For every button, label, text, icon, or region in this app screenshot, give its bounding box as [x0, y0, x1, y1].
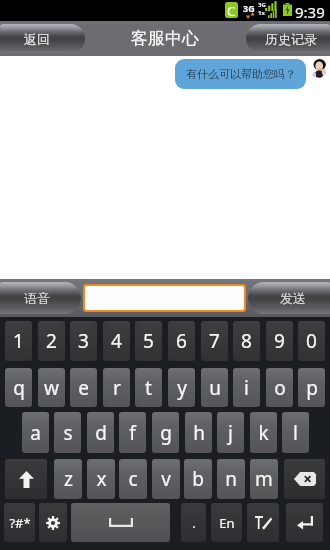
button[interactable]: z — [54, 459, 82, 499]
staticText: g — [160, 420, 172, 446]
button[interactable]: v — [152, 459, 180, 499]
staticText: 3 — [78, 328, 89, 354]
staticText: y — [177, 375, 187, 401]
staticText: 6 — [176, 328, 187, 354]
staticText: i — [244, 375, 249, 401]
staticText: c — [128, 466, 138, 492]
button[interactable]: j — [217, 412, 244, 453]
button[interactable]: Backspace — [284, 459, 325, 499]
staticText: h — [193, 420, 205, 446]
staticText: e — [78, 375, 89, 401]
staticText: 历史记录 — [265, 31, 317, 47]
staticText: . — [192, 514, 196, 532]
button[interactable]: Shift — [5, 459, 47, 499]
staticText: v — [161, 466, 171, 492]
button[interactable]: m — [250, 459, 278, 499]
staticText: m — [255, 466, 273, 492]
button[interactable]: 9 — [266, 321, 293, 361]
staticText: k — [258, 420, 269, 446]
button[interactable]: p — [298, 368, 325, 407]
staticText: 返回 — [24, 31, 50, 47]
staticText: 3G — [243, 2, 255, 14]
staticText: 1x — [258, 9, 265, 17]
button[interactable]: 语音 — [0, 282, 81, 314]
button[interactable]: 4 — [103, 321, 130, 361]
staticText: o — [274, 375, 286, 401]
button[interactable]: Handwriting — [247, 503, 279, 542]
button[interactable]: 0 — [298, 321, 325, 361]
staticText: 9:39 — [295, 2, 325, 22]
button[interactable]: 6 — [168, 321, 195, 361]
button[interactable]: s — [54, 412, 81, 453]
staticText: En — [219, 514, 235, 532]
staticText: 语音 — [24, 290, 50, 306]
staticText: f — [129, 420, 136, 446]
staticText: 2 — [46, 328, 57, 354]
button[interactable]: g — [152, 412, 179, 453]
staticText: a — [30, 420, 41, 446]
button[interactable]: k — [250, 412, 277, 453]
button[interactable]: 5 — [135, 321, 162, 361]
staticText: 5 — [143, 328, 154, 354]
button[interactable]: r — [103, 368, 130, 407]
staticText: 8 — [241, 328, 252, 354]
staticText: b — [192, 466, 204, 492]
button[interactable]: 3 — [70, 321, 97, 361]
staticText: 3G — [258, 1, 266, 9]
staticText: d — [95, 420, 107, 446]
button[interactable]: 发送 — [248, 282, 330, 314]
button[interactable]: 7 — [201, 321, 228, 361]
button[interactable]: t — [135, 368, 162, 407]
staticText: 发送 — [280, 290, 306, 306]
staticText: j — [228, 420, 233, 446]
button[interactable]: y — [168, 368, 195, 407]
button[interactable]: i — [233, 368, 260, 407]
button[interactable]: e — [70, 368, 97, 407]
button[interactable]: . — [181, 503, 206, 542]
button[interactable]: c — [119, 459, 147, 499]
staticText: t — [145, 375, 152, 401]
staticText: 4 — [111, 328, 122, 354]
staticText: 1 — [13, 328, 24, 354]
button[interactable]: x — [87, 459, 115, 499]
button[interactable] — [85, 286, 244, 310]
button[interactable]: 1 — [5, 321, 32, 361]
button[interactable]: w — [38, 368, 65, 407]
staticText: q — [13, 375, 25, 401]
staticText: n — [225, 466, 237, 492]
button[interactable]: h — [185, 412, 212, 453]
staticText: x — [96, 466, 107, 492]
button[interactable]: b — [184, 459, 212, 499]
staticText: 有什么可以帮助您吗？ — [186, 67, 296, 81]
button[interactable]: l — [282, 412, 309, 453]
button[interactable]: n — [217, 459, 245, 499]
staticText: 客服中心 — [131, 28, 199, 49]
staticText: z — [64, 466, 73, 492]
staticText: r — [113, 375, 121, 401]
staticText: 9 — [274, 328, 285, 354]
staticText: p — [306, 375, 318, 401]
staticText: s — [63, 420, 73, 446]
staticText: 7 — [209, 328, 220, 354]
button[interactable]: En — [211, 503, 242, 542]
staticText: u — [209, 375, 221, 401]
button[interactable]: 历史记录 — [246, 24, 330, 53]
button[interactable]: ?#* — [4, 503, 35, 542]
button[interactable]: Settings — [39, 503, 67, 542]
staticText: 0 — [306, 328, 317, 354]
button[interactable]: 返回 — [0, 24, 85, 53]
button[interactable]: u — [201, 368, 228, 407]
button[interactable]: Space — [71, 503, 170, 542]
button[interactable]: o — [266, 368, 293, 407]
button[interactable]: d — [87, 412, 114, 453]
button[interactable]: q — [5, 368, 32, 407]
button[interactable]: a — [22, 412, 49, 453]
staticText: ?#* — [9, 514, 31, 532]
button[interactable]: 8 — [233, 321, 260, 361]
button[interactable]: f — [119, 412, 146, 453]
button[interactable]: 2 — [38, 321, 65, 361]
staticText: l — [293, 420, 298, 446]
staticText: C — [227, 2, 236, 18]
button[interactable]: Enter — [286, 503, 323, 542]
staticText: w — [44, 375, 59, 401]
